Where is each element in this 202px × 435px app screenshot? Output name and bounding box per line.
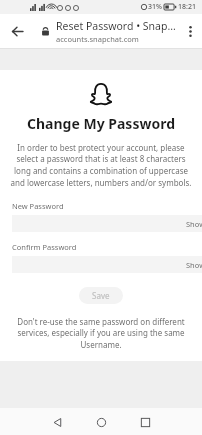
staticText: 18:21 (178, 2, 196, 12)
staticText: Don't re-use the same password on differ… (7, 316, 195, 351)
button[interactable]: More options (178, 14, 202, 48)
staticText: Show (186, 260, 202, 270)
button[interactable]: Home (88, 409, 114, 435)
staticText: 31% (148, 2, 162, 12)
staticText: In order to best protect your account, p… (8, 142, 194, 189)
button[interactable]: Back (0, 14, 34, 48)
button[interactable]: Recent apps (132, 409, 158, 435)
staticText: Confirm Password (12, 242, 77, 252)
button[interactable]: Show (12, 215, 202, 232)
button[interactable]: Back (44, 409, 70, 435)
staticText: accounts.snapchat.com (56, 34, 139, 44)
staticText: Save (92, 290, 110, 301)
button[interactable]: Show (12, 256, 202, 273)
staticText: New Password (12, 201, 64, 211)
button[interactable]: Reset Password • Snapchat (56, 19, 178, 44)
staticText: Reset Password • Snapchat (56, 19, 178, 33)
staticText: Show (186, 219, 202, 229)
button[interactable]: Save (79, 287, 123, 304)
button[interactable]: Site information, secure connection (34, 14, 56, 48)
staticText: Change My Password (0, 114, 202, 133)
